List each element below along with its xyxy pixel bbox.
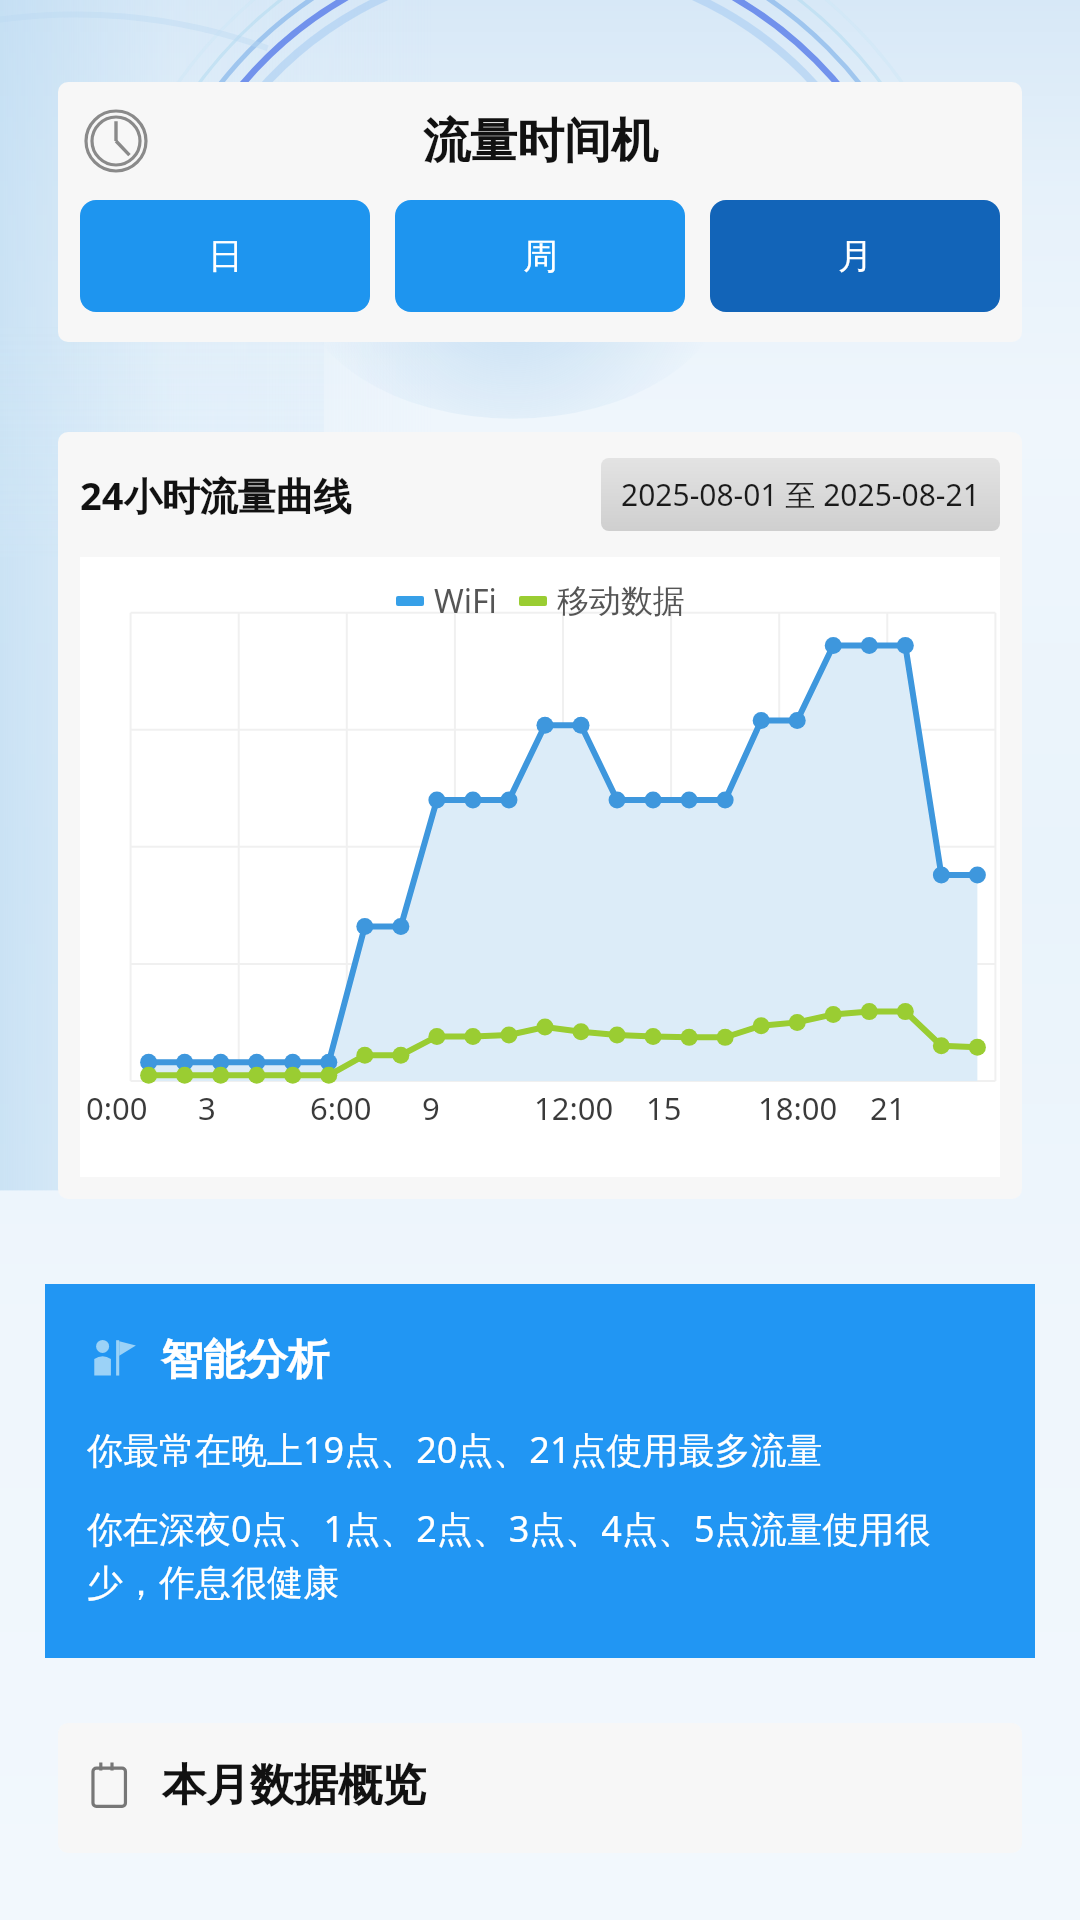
staticText: 15 xyxy=(646,1087,758,1129)
staticText: 24小时流量曲线 xyxy=(80,469,352,521)
staticText: 18:00 xyxy=(758,1087,870,1129)
staticText: WiFi xyxy=(434,579,497,623)
other: Calendar xyxy=(84,1757,140,1813)
staticText: 2025-08-01 至 2025-08-21 xyxy=(621,474,980,515)
staticText: 0:00 xyxy=(86,1087,198,1129)
staticText: 周 xyxy=(523,234,558,278)
staticText: 你最常在晚上19点、20点、21点使用最多流量 xyxy=(87,1425,823,1474)
staticText: 9 xyxy=(422,1087,534,1129)
staticText: 6:00 xyxy=(310,1087,422,1129)
staticText: 智能分析 xyxy=(161,1334,329,1387)
staticText: 流量时间机 xyxy=(423,112,658,171)
staticText: 12:00 xyxy=(534,1087,646,1129)
staticText: 月 xyxy=(838,234,873,278)
button[interactable]: 月 xyxy=(710,200,1000,312)
staticText: 3 xyxy=(198,1087,310,1129)
staticText: 本月数据概览 xyxy=(162,1758,426,1813)
button[interactable]: 2025-08-01 至 2025-08-21 xyxy=(601,458,1000,531)
staticText: 移动数据 xyxy=(557,581,685,621)
staticText: 日 xyxy=(208,234,243,278)
staticText: 你在深夜0点、1点、2点、3点、4点、5点流量使用很少，作息很健康 xyxy=(87,1504,999,1606)
other: Clock xyxy=(84,109,148,173)
staticText: 21 xyxy=(870,1087,982,1129)
button[interactable]: 周 xyxy=(395,200,685,312)
other: Analysis xyxy=(87,1335,139,1387)
button[interactable]: 日 xyxy=(80,200,370,312)
